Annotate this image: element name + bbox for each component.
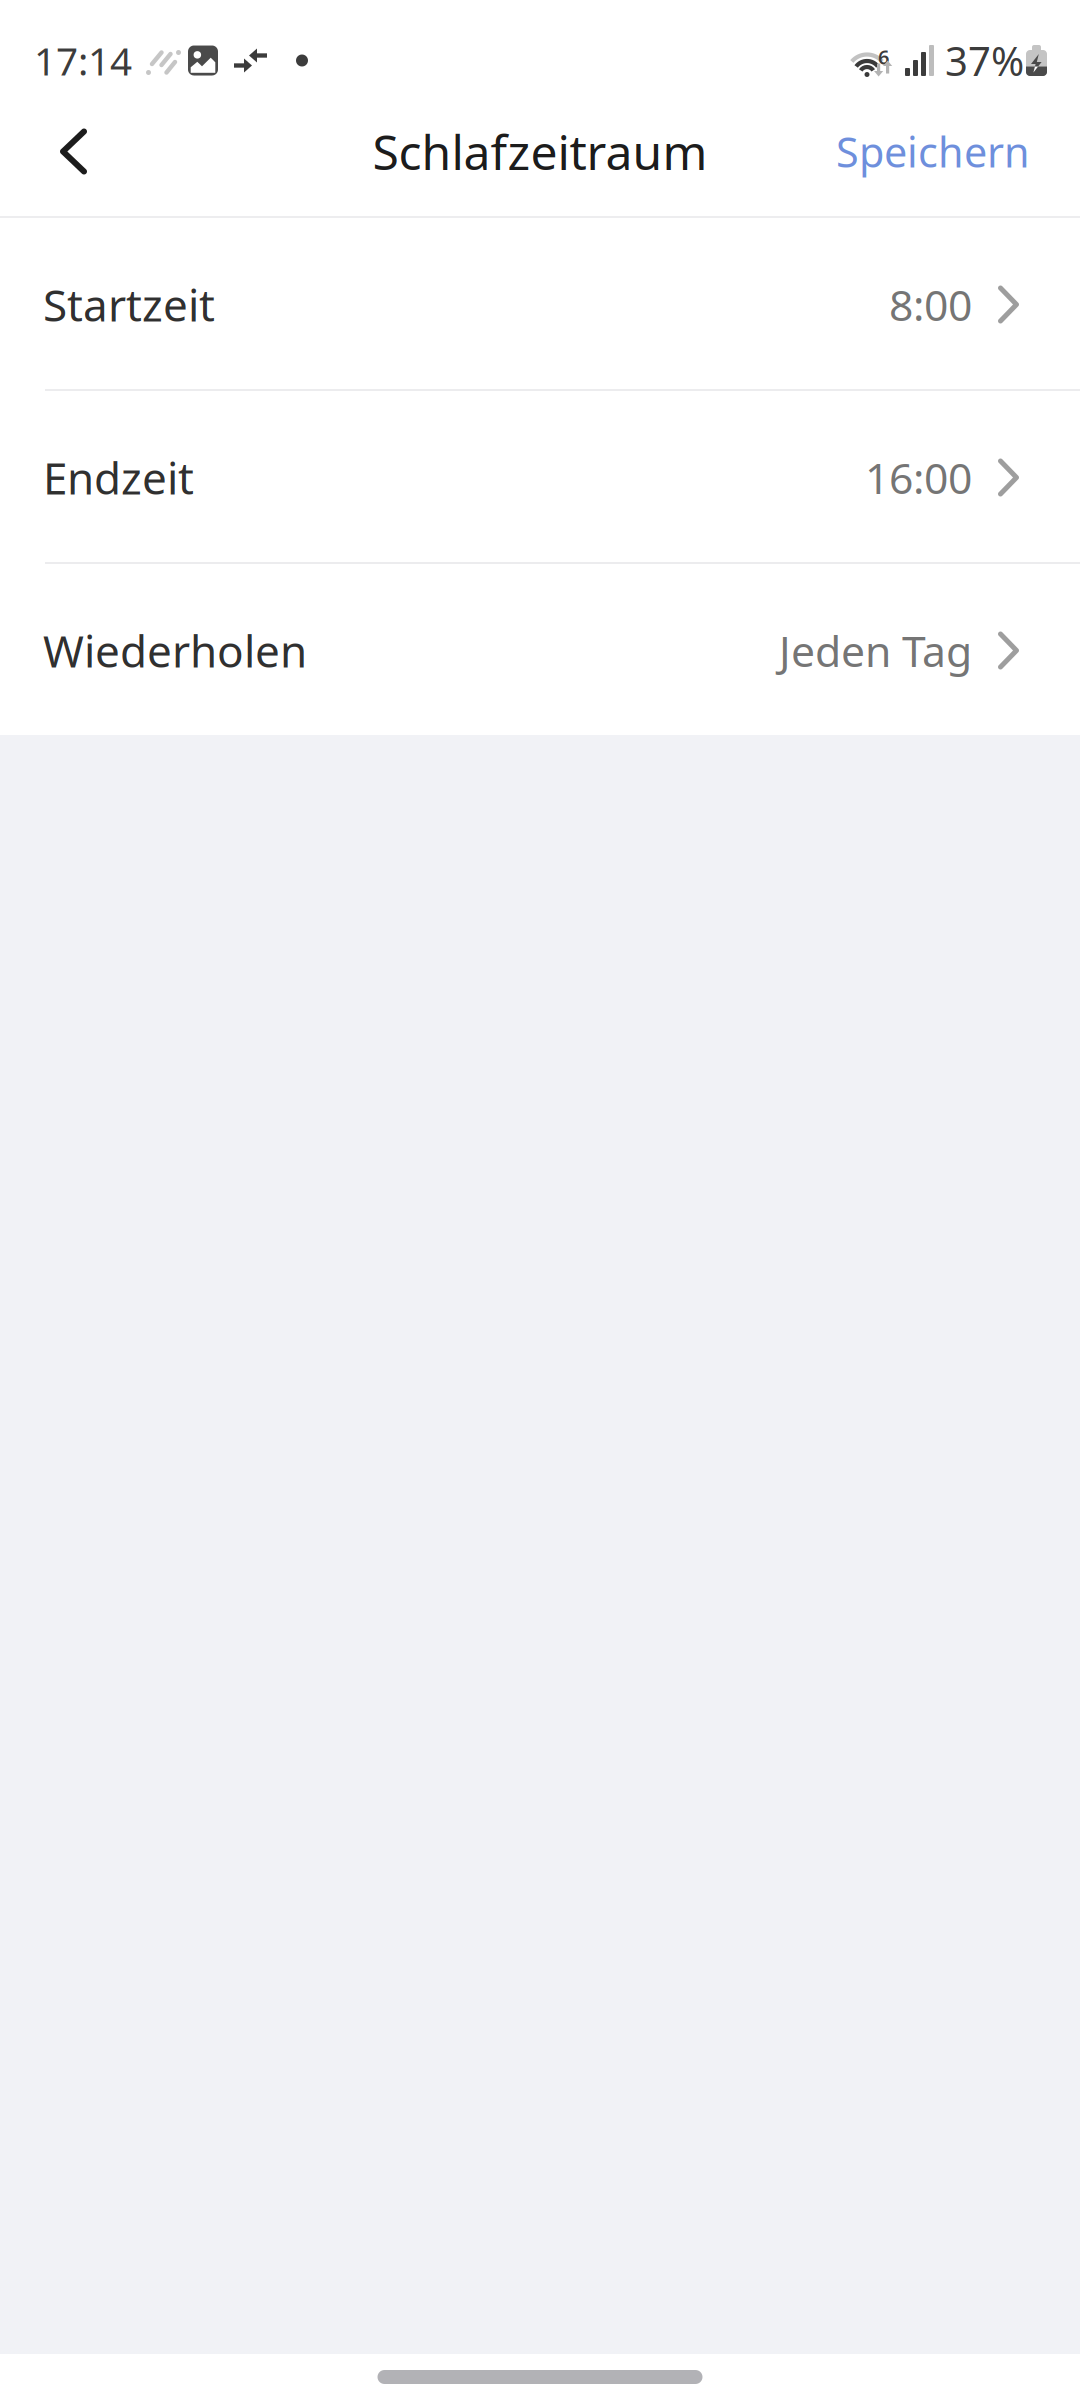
staticText: 8:00 bbox=[889, 276, 972, 333]
staticText: Speichern bbox=[836, 124, 1030, 179]
button[interactable]: Startzeit bbox=[0, 218, 1080, 389]
button[interactable]: Wiederholen bbox=[0, 564, 1080, 735]
staticText: Wiederholen bbox=[43, 621, 307, 680]
staticText: 37% bbox=[945, 34, 1024, 87]
staticText: Endzeit bbox=[43, 448, 194, 507]
button[interactable]: Speichern bbox=[806, 104, 1080, 199]
staticText: Schlafzeitraum bbox=[372, 120, 707, 183]
staticText: 16:00 bbox=[865, 449, 972, 506]
button[interactable]: Back bbox=[0, 104, 131, 199]
staticText: Startzeit bbox=[43, 275, 215, 334]
staticText: 17:14 bbox=[34, 35, 132, 86]
staticText: 6 bbox=[878, 43, 889, 70]
staticText: Jeden Tag bbox=[779, 622, 972, 679]
button[interactable]: Endzeit bbox=[0, 391, 1080, 562]
